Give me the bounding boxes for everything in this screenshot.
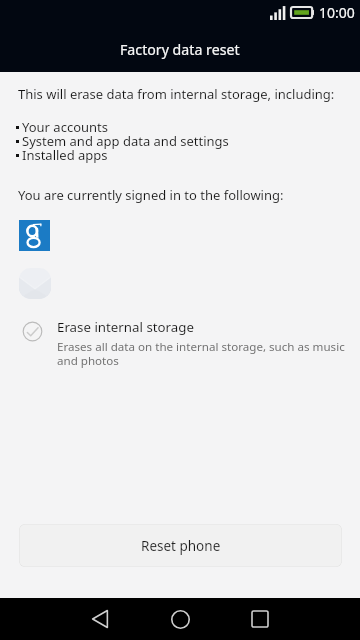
button[interactable]: Back (64, 598, 136, 640)
staticText: Erases all data on the internal storage,… (57, 339, 350, 368)
staticText: Factory data reset (120, 40, 240, 59)
staticText: Installed apps (22, 146, 108, 164)
button[interactable]: Reset phone (19, 524, 342, 567)
staticText: System and app data and settings (22, 132, 229, 150)
button[interactable]: Home (144, 598, 216, 640)
staticText: This will erase data from internal stora… (18, 85, 335, 103)
staticText: Your accounts (22, 118, 108, 136)
staticText: Erase internal storage (57, 318, 194, 336)
staticText: You are currently signed in to the follo… (18, 186, 284, 204)
staticText: 10:00 (319, 3, 355, 22)
button[interactable]: Erase internal storage (0, 312, 360, 376)
staticText: Reset phone (141, 537, 221, 555)
button[interactable]: Recent apps (224, 598, 296, 640)
